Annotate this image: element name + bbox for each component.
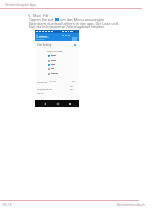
button[interactable]: Temperature bbox=[37, 85, 77, 91]
staticText: Speichern durchzufuehren in der app. Die… bbox=[29, 21, 119, 26]
staticText: 5. Maxi .Pdf bbox=[28, 13, 49, 18]
staticText: Display Image bbox=[47, 50, 63, 53]
button[interactable] bbox=[48, 72, 60, 75]
staticText: Others bbox=[37, 92, 45, 95]
button[interactable]: Recent apps bbox=[67, 101, 72, 106]
staticText: Verwendung der App bbox=[5, 3, 36, 7]
staticText: Benutzerhandbuch bbox=[117, 203, 145, 207]
staticText: Unit Setting bbox=[37, 43, 52, 47]
staticText: DE-16 bbox=[3, 203, 12, 207]
staticText: Tippen Sie auf bbox=[29, 17, 55, 22]
staticText: Temperature bbox=[37, 87, 53, 90]
button[interactable] bbox=[48, 54, 60, 57]
button[interactable]: Pressure bbox=[37, 78, 77, 84]
staticText: fuer die Informationen Fahrzeugdetail er… bbox=[29, 24, 105, 29]
button[interactable] bbox=[48, 59, 60, 62]
button[interactable]: Home bbox=[55, 101, 60, 106]
staticText: kPa bbox=[72, 80, 76, 83]
button[interactable]: Back bbox=[42, 101, 47, 106]
button[interactable]: Unit Setting bbox=[37, 43, 76, 47]
button[interactable] bbox=[48, 67, 60, 70]
staticText: um das Menu anzuzeigen bbox=[59, 17, 105, 22]
button[interactable] bbox=[48, 63, 60, 66]
staticText: psi/kPa bbox=[70, 85, 77, 91]
staticText: Pressure bbox=[37, 80, 48, 83]
